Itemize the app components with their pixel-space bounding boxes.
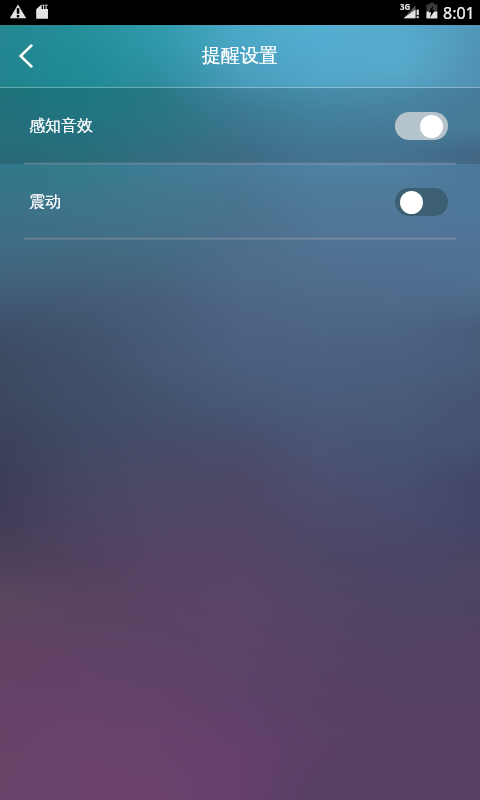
staticText: 提醒设置 [202, 44, 278, 68]
button[interactable]: 感知音效 [0, 88, 480, 164]
button[interactable]: 震动 [0, 164, 480, 239]
staticText: 感知音效 [29, 116, 93, 136]
staticText: 8:01 [443, 2, 475, 24]
button[interactable]: Back [0, 30, 52, 82]
staticText: 震动 [29, 192, 61, 212]
staticText: 3G [400, 1, 411, 12]
